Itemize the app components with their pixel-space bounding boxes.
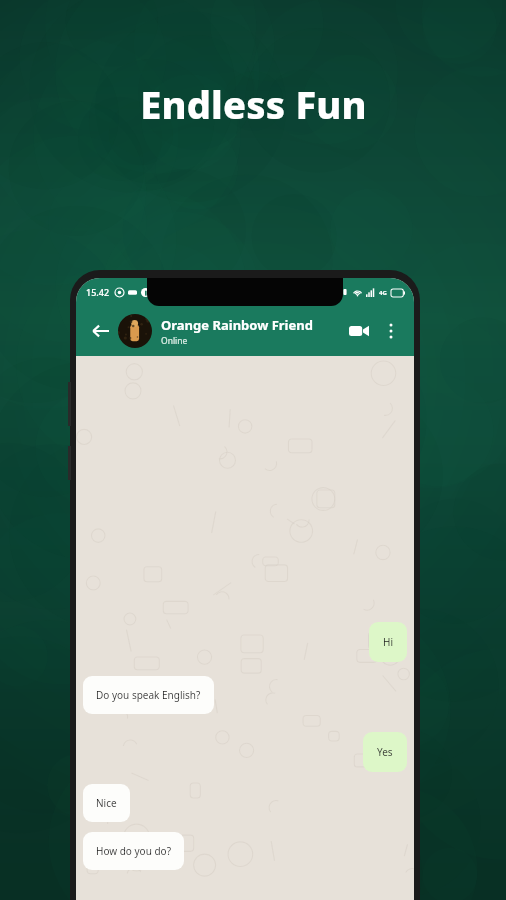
- staticText: Hi: [383, 635, 393, 649]
- button[interactable]: Do you speak English?: [83, 676, 214, 714]
- button[interactable]: More options: [376, 316, 406, 346]
- button[interactable]: Hi: [369, 622, 407, 662]
- staticText: 15.42: [86, 286, 110, 298]
- staticText: Nice: [96, 796, 117, 810]
- button[interactable]: Nice: [83, 784, 130, 822]
- staticText: Do you speak English?: [96, 688, 201, 702]
- button[interactable]: Yes: [363, 732, 407, 772]
- staticText: 4G: [379, 289, 387, 297]
- staticText: How do you do?: [96, 844, 171, 858]
- button[interactable]: Video call: [342, 314, 376, 348]
- button[interactable]: Profile photo: [118, 314, 152, 348]
- staticText: Endless Fun: [140, 78, 367, 130]
- button[interactable]: Back: [84, 315, 116, 347]
- staticText: Online: [161, 335, 188, 347]
- button[interactable]: How do you do?: [83, 832, 184, 870]
- staticText: Orange Rainbow Friend: [161, 316, 313, 334]
- staticText: Yes: [377, 745, 393, 759]
